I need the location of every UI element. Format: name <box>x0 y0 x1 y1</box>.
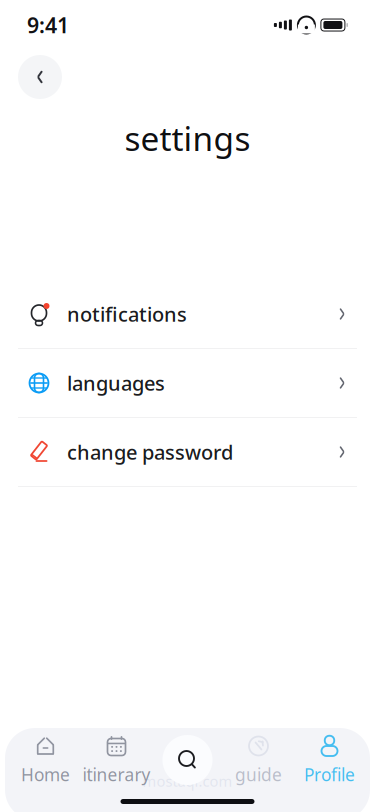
staticText: languages <box>67 370 165 396</box>
staticText: 9:41 <box>27 11 69 39</box>
button[interactable]: guide <box>223 732 294 788</box>
staticText: change password <box>67 439 233 465</box>
button[interactable]: itinerary <box>81 732 152 788</box>
button[interactable]: change password <box>0 418 375 486</box>
button[interactable]: languages <box>0 349 375 417</box>
button[interactable]: Home <box>10 732 81 788</box>
button[interactable]: Profile <box>294 732 365 788</box>
staticText: settings <box>124 116 250 160</box>
button[interactable]: Back <box>18 55 62 99</box>
staticText: Home <box>21 763 70 786</box>
staticText: Profile <box>304 763 355 786</box>
staticText: guide <box>235 763 282 786</box>
button[interactable]: Search <box>152 732 223 788</box>
staticText: mostaql.com <box>142 771 232 791</box>
button[interactable]: notifications <box>0 280 375 348</box>
staticText: notifications <box>67 301 187 327</box>
staticText: itinerary <box>82 763 150 786</box>
